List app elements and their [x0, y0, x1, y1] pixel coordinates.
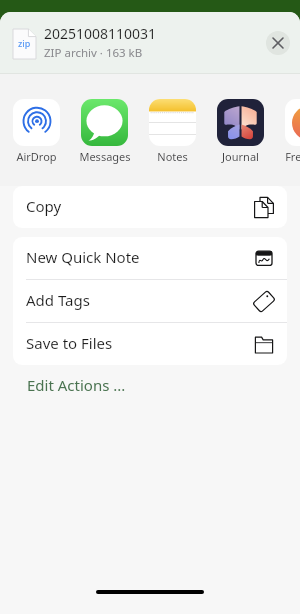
- staticText: Notes: [157, 149, 188, 164]
- button[interactable]: Messages: [81, 99, 128, 165]
- staticText: Messages: [79, 149, 131, 164]
- button[interactable]: Copy: [13, 186, 287, 228]
- staticText: AirDrop: [16, 149, 57, 164]
- button[interactable]: Close: [266, 31, 290, 55]
- staticText: ZIP archiv · 163 kB: [44, 45, 143, 61]
- button[interactable]: AirDrop: [13, 99, 60, 165]
- button[interactable]: Journal: [217, 99, 264, 165]
- staticText: 20251008110031: [44, 24, 157, 43]
- staticText: Copy: [26, 196, 62, 216]
- staticText: Journal: [222, 149, 259, 164]
- button[interactable]: Freeform: [285, 99, 300, 165]
- staticText: Add Tags: [26, 290, 90, 310]
- staticText: Edit Actions ...: [27, 375, 126, 395]
- button[interactable]: Edit Actions ...: [13, 375, 287, 405]
- staticText: zip: [18, 37, 31, 49]
- button[interactable]: Save to Files: [13, 323, 287, 365]
- staticText: Save to Files: [26, 333, 113, 353]
- button[interactable]: Notes: [149, 99, 196, 165]
- staticText: New Quick Note: [26, 247, 140, 267]
- button[interactable]: Add Tags: [13, 280, 287, 322]
- staticText: Freeform: [285, 149, 300, 164]
- button[interactable]: New Quick Note: [13, 237, 287, 279]
